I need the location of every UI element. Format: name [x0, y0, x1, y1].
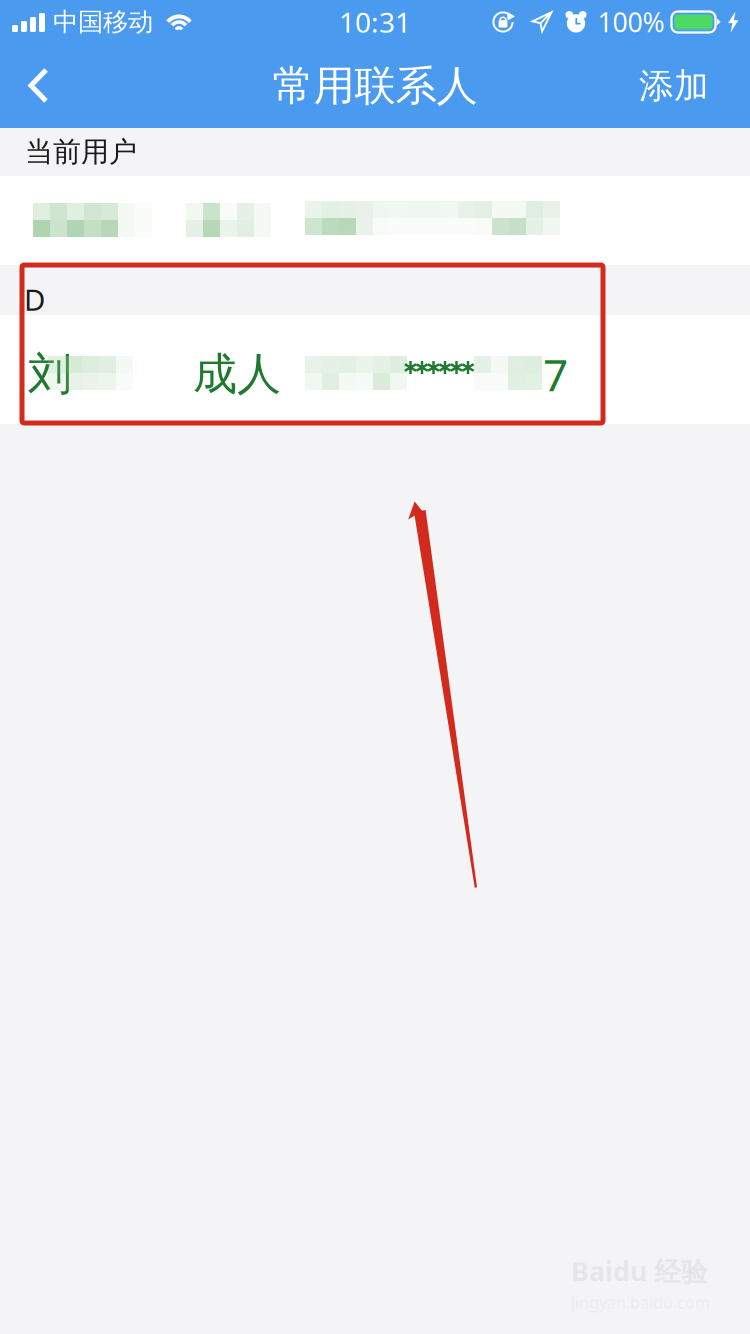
staticText: 10:31 [339, 3, 411, 41]
staticText: 中国移动 [53, 6, 153, 37]
staticText: 当前用户 [25, 135, 137, 169]
staticText: D [24, 280, 45, 319]
staticText: 7 [543, 345, 568, 403]
staticText: 常用联系人 [272, 61, 477, 111]
button[interactable]: 添加 [617, 44, 750, 128]
staticText: 成人 [193, 347, 281, 401]
staticText: 100% [597, 4, 664, 40]
staticText: 刘 [28, 347, 72, 401]
staticText: Baidu 经验 [571, 1253, 708, 1289]
staticText: 添加 [639, 65, 709, 107]
button[interactable]: Back [0, 44, 72, 128]
